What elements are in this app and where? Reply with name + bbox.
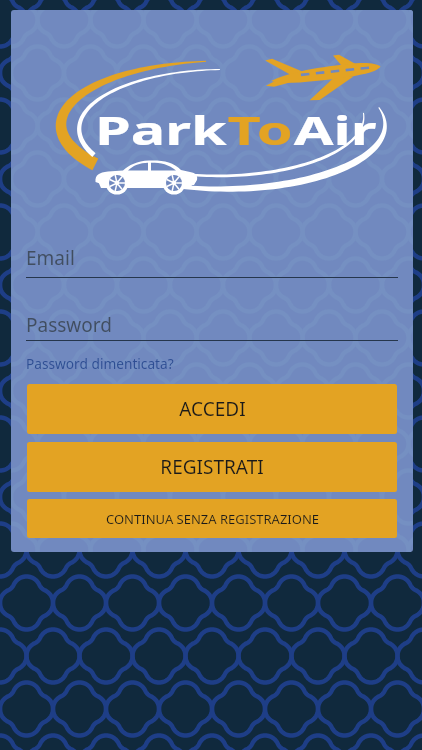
button[interactable]: REGISTRATI xyxy=(27,442,397,492)
button[interactable]: Password dimenticata? xyxy=(26,354,174,373)
staticText: Email xyxy=(26,245,75,271)
staticText: ACCEDI xyxy=(179,396,246,422)
staticText: To xyxy=(227,102,294,156)
staticText: Air xyxy=(294,102,377,156)
button[interactable]: Email xyxy=(26,245,398,278)
staticText: CONTINUA SENZA REGISTRAZIONE xyxy=(106,510,319,528)
button[interactable]: CONTINUA SENZA REGISTRAZIONE xyxy=(27,499,397,538)
staticText: REGISTRATI xyxy=(160,454,264,480)
staticText: Park xyxy=(95,102,227,156)
button[interactable]: Password xyxy=(26,312,398,341)
button[interactable]: ACCEDI xyxy=(27,384,397,434)
staticText: Password xyxy=(26,312,112,338)
